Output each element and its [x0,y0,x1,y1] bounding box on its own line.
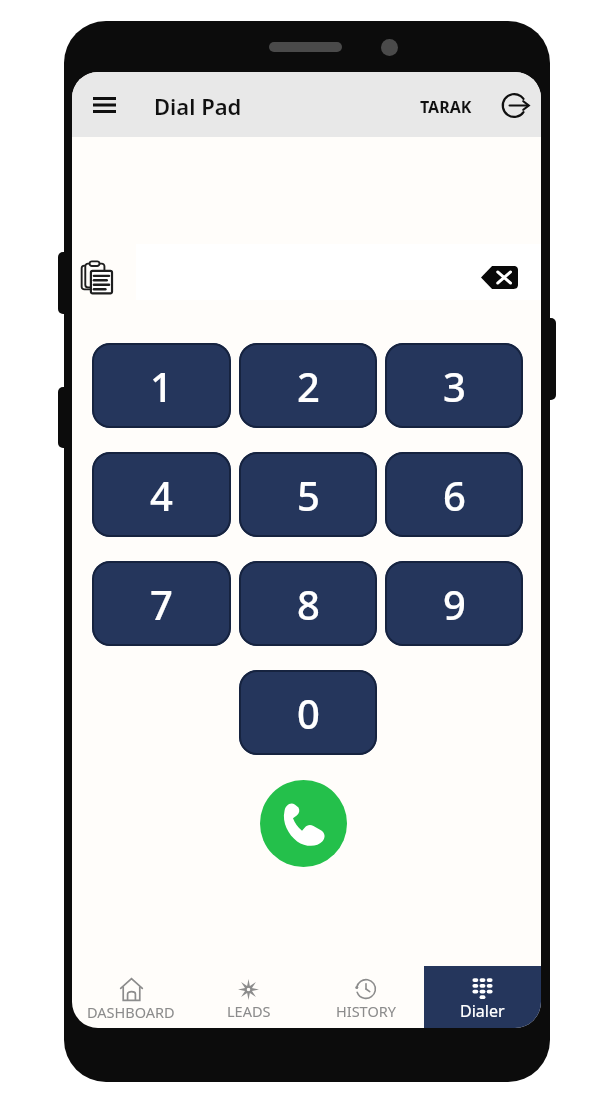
button[interactable]: Logout [496,85,536,125]
button[interactable] [136,244,541,300]
button[interactable]: Paste [78,258,116,296]
button[interactable]: Backspace [478,259,520,295]
staticText: HISTORY [336,1001,396,1021]
staticText: 8 [297,577,320,631]
button[interactable]: 2 [239,343,377,428]
staticText: Dialer [460,1000,505,1022]
button[interactable]: 0 [239,670,377,755]
staticText: 0 [297,686,320,740]
button[interactable]: 6 [385,452,523,537]
button[interactable]: 7 [92,561,231,646]
button[interactable]: 4 [92,452,231,537]
staticText: 4 [150,468,173,522]
staticText: DASHBOARD [87,1002,175,1022]
button[interactable]: 3 [385,343,523,428]
button[interactable]: 8 [239,561,377,646]
staticText: 2 [297,359,320,413]
staticText: 3 [443,359,466,413]
staticText: TARAK [420,96,472,118]
staticText: Dial Pad [154,91,242,121]
staticText: 6 [443,468,466,522]
button[interactable]: 5 [239,452,377,537]
button[interactable]: DASHBOARD [72,966,190,1028]
staticText: 9 [443,577,466,631]
button[interactable]: 9 [385,561,523,646]
staticText: 5 [297,468,320,522]
staticText: LEADS [227,1001,271,1021]
button[interactable]: Call [260,780,347,867]
button[interactable]: 1 [92,343,231,428]
button[interactable]: LEADS [190,966,307,1028]
button[interactable]: Dialer [424,966,541,1028]
button[interactable]: Menu [83,84,125,126]
button[interactable]: HISTORY [307,966,424,1028]
staticText: 1 [150,359,173,413]
staticText: 7 [150,577,173,631]
